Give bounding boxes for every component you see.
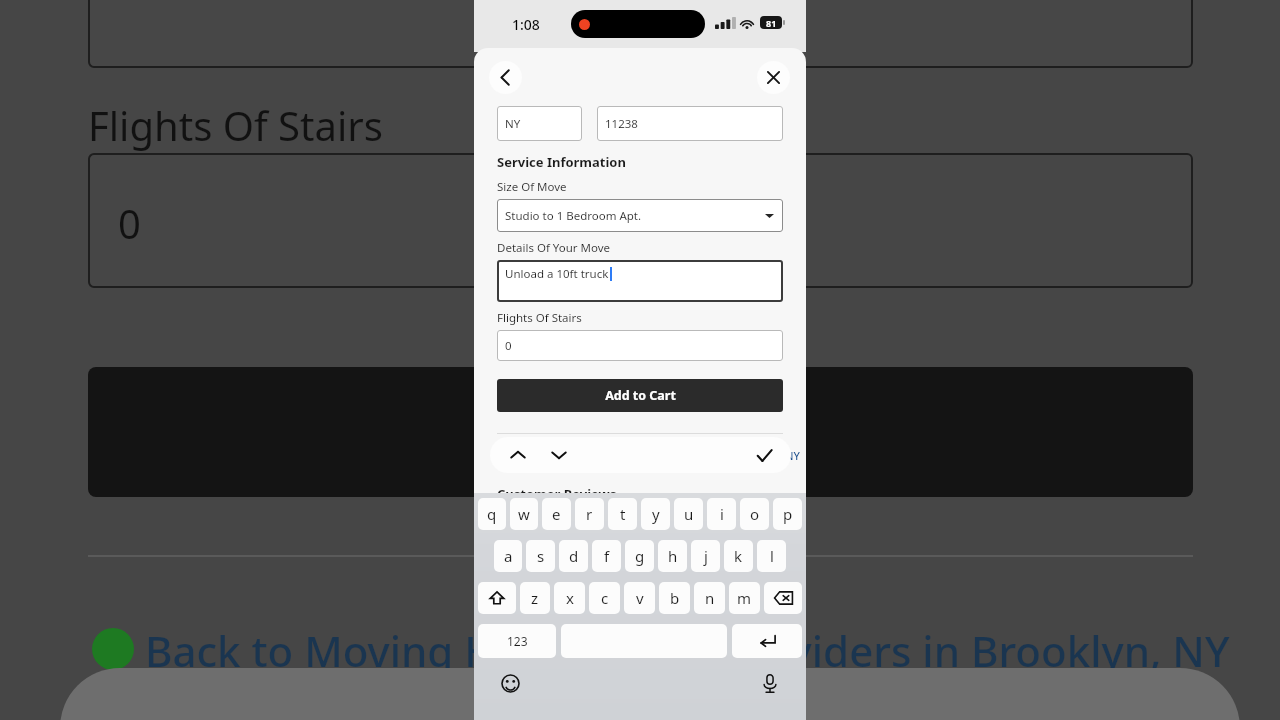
staticText: NY: [505, 116, 521, 132]
staticText: o: [750, 504, 760, 524]
button[interactable]: m: [729, 582, 760, 614]
staticText: Service Information: [497, 153, 626, 171]
staticText: 123: [507, 633, 528, 649]
button[interactable]: r: [575, 498, 604, 530]
button[interactable]: 0: [497, 330, 783, 361]
button[interactable]: p: [773, 498, 802, 530]
button[interactable]: e: [542, 498, 571, 530]
button[interactable]: 11238: [597, 106, 783, 141]
button[interactable]: v: [624, 582, 655, 614]
staticText: g: [635, 546, 645, 566]
button[interactable]: d: [559, 540, 588, 572]
button[interactable]: o: [740, 498, 769, 530]
staticText: y: [652, 504, 660, 524]
staticText: w: [518, 504, 530, 524]
button[interactable]: b: [659, 582, 690, 614]
staticText: p: [783, 504, 793, 524]
staticText: j: [704, 546, 708, 566]
button[interactable]: q: [478, 498, 506, 530]
staticText: Back to Moving Help Service Providers in…: [516, 448, 801, 463]
staticText: t: [620, 504, 626, 524]
button[interactable]: Next field: [541, 437, 577, 473]
button[interactable]: x: [554, 582, 585, 614]
staticText: Back to Moving Help Service Providers in…: [145, 622, 1230, 679]
button[interactable]: t: [608, 498, 637, 530]
button[interactable]: u: [674, 498, 703, 530]
button[interactable]: n: [694, 582, 725, 614]
button[interactable]: Unload a 10ft truck: [497, 260, 783, 302]
staticText: f: [604, 546, 610, 566]
button[interactable]: j: [691, 540, 720, 572]
staticText: v: [636, 588, 644, 608]
button[interactable]: Back to Moving Help Service Providers in…: [497, 448, 801, 463]
button[interactable]: Back: [489, 61, 522, 94]
button[interactable]: l: [757, 540, 786, 572]
staticText: u: [684, 504, 694, 524]
staticText: Size Of Move: [497, 179, 567, 195]
staticText: Flights Of Stairs: [88, 98, 383, 152]
button[interactable]: Studio to 1 Bedroom Apt.: [497, 199, 783, 232]
button[interactable]: i: [707, 498, 736, 530]
button[interactable]: z: [520, 582, 550, 614]
staticText: k: [734, 546, 743, 566]
staticText: l: [770, 546, 774, 566]
button[interactable]: Add to Cart: [497, 379, 783, 412]
button[interactable]: NY: [497, 106, 582, 141]
staticText: x: [566, 588, 574, 608]
staticText: c: [601, 588, 609, 608]
button[interactable]: c: [589, 582, 620, 614]
staticText: q: [487, 504, 497, 524]
staticText: Unload a 10ft truck: [505, 266, 609, 282]
button[interactable]: k: [724, 540, 753, 572]
button[interactable]: Return: [732, 624, 802, 658]
staticText: i: [720, 504, 724, 524]
button[interactable]: f: [592, 540, 621, 572]
button[interactable]: a: [494, 540, 522, 572]
staticText: b: [670, 588, 680, 608]
staticText: s: [537, 546, 545, 566]
button[interactable]: y: [641, 498, 670, 530]
button[interactable]: 123: [478, 624, 556, 658]
staticText: 0: [118, 196, 141, 250]
staticText: 11238: [605, 116, 638, 132]
staticText: Customer Reviews: [497, 485, 617, 494]
button[interactable]: h: [658, 540, 687, 572]
staticText: 1:08: [512, 15, 540, 34]
button[interactable]: w: [510, 498, 538, 530]
button[interactable]: Emoji: [496, 669, 524, 697]
button[interactable]: Backspace: [764, 582, 802, 614]
staticText: 81: [766, 17, 777, 29]
button[interactable]: Previous field: [500, 437, 536, 473]
button[interactable]: Close: [757, 61, 790, 94]
button[interactable]: Shift: [478, 582, 516, 614]
button[interactable]: Done: [747, 438, 781, 472]
button[interactable]: Dictation: [756, 669, 784, 697]
staticText: z: [531, 588, 539, 608]
staticText: r: [586, 504, 593, 524]
staticText: d: [569, 546, 579, 566]
staticText: h: [668, 546, 678, 566]
staticText: n: [705, 588, 715, 608]
staticText: a: [504, 546, 513, 566]
staticText: 0: [505, 338, 512, 354]
staticText: e: [552, 504, 561, 524]
staticText: Flights Of Stairs: [497, 310, 582, 326]
staticText: m: [737, 588, 752, 608]
staticText: Details Of Your Move: [497, 240, 611, 256]
button[interactable]: g: [625, 540, 654, 572]
button[interactable]: s: [526, 540, 555, 572]
staticText: Add to Cart: [605, 387, 676, 404]
staticText: Studio to 1 Bedroom Apt.: [505, 208, 642, 224]
